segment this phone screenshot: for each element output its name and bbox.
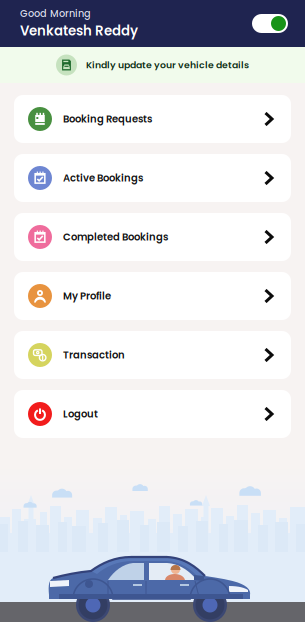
staticText: Booking Requests bbox=[63, 112, 152, 126]
staticText: My Profile bbox=[63, 289, 111, 303]
staticText: Kindly update your vehicle details bbox=[86, 58, 249, 72]
button[interactable]: Completed Bookings bbox=[14, 213, 291, 261]
button[interactable]: Logout bbox=[14, 390, 291, 438]
staticText: Logout bbox=[63, 407, 98, 421]
staticText: Good Morning bbox=[20, 7, 91, 20]
staticText: Transaction bbox=[63, 348, 125, 362]
staticText: Active Bookings bbox=[63, 171, 143, 185]
button[interactable]: Availability toggle bbox=[252, 14, 288, 33]
button[interactable]: Active Bookings bbox=[14, 154, 291, 202]
staticText: Completed Bookings bbox=[63, 230, 168, 244]
button[interactable]: Transaction bbox=[14, 331, 291, 379]
button[interactable]: My Profile bbox=[14, 272, 291, 320]
button[interactable]: Booking Requests bbox=[14, 95, 291, 143]
staticText: Venkatesh Reddy bbox=[20, 21, 138, 40]
